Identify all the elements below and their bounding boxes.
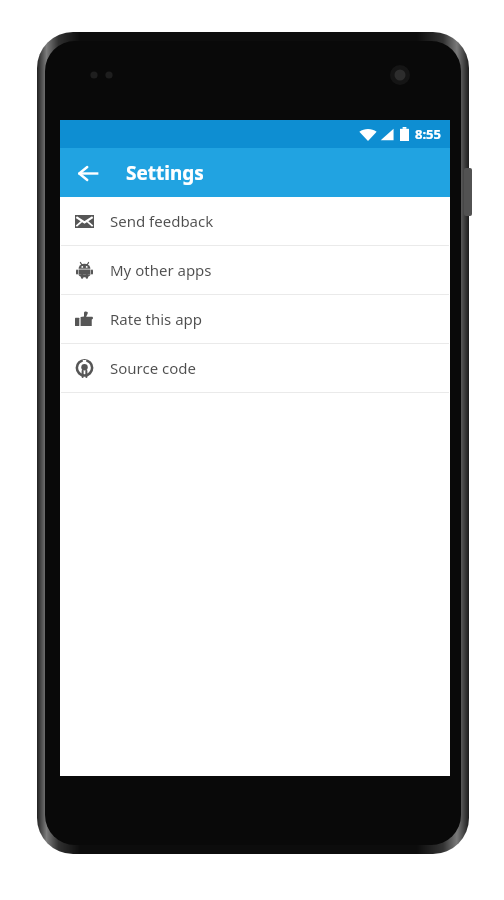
button[interactable]: My other apps [60, 246, 450, 294]
staticText: My other apps [110, 260, 212, 280]
staticText: 8:55 [415, 125, 441, 143]
button[interactable]: Back [69, 154, 107, 192]
button[interactable]: Source code [60, 344, 450, 392]
staticText: Settings [126, 160, 204, 186]
button[interactable]: Send feedback [60, 197, 450, 245]
staticText: Source code [110, 358, 196, 378]
staticText: Rate this app [110, 309, 203, 329]
button[interactable]: Rate this app [60, 295, 450, 343]
staticText: Send feedback [110, 211, 214, 231]
